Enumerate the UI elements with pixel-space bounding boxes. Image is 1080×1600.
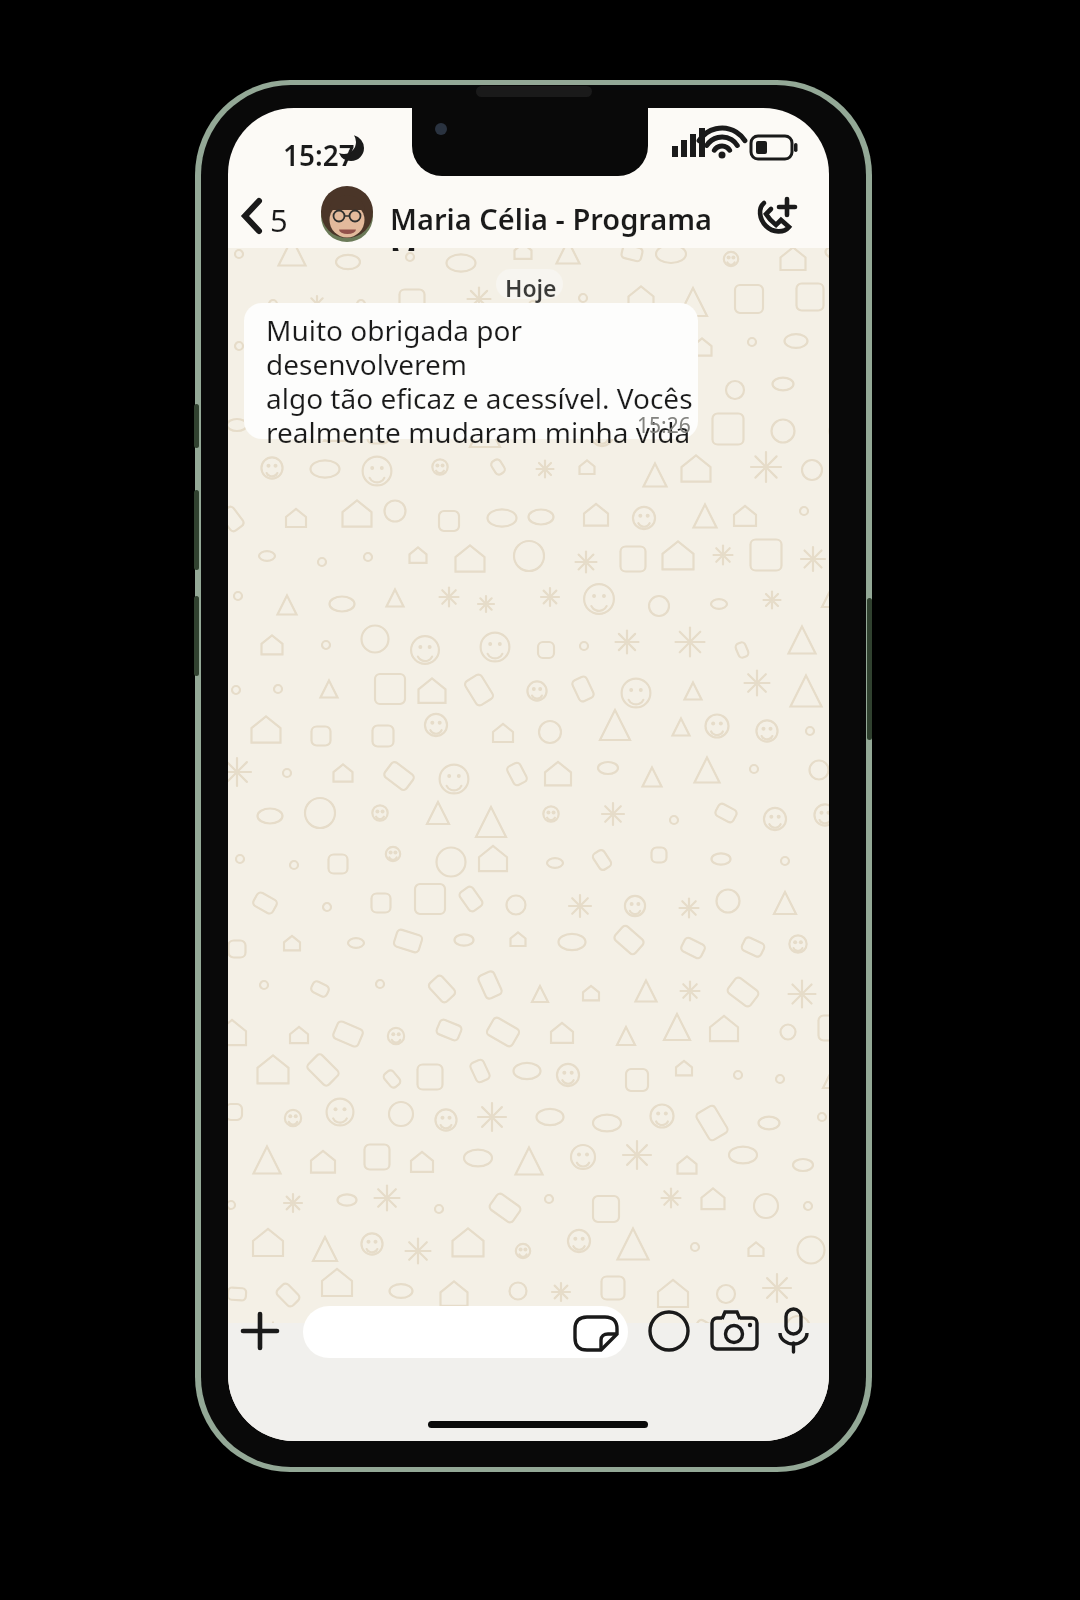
button[interactable]: Pix payment	[646, 1304, 694, 1358]
button[interactable]: Camera	[710, 1304, 760, 1358]
staticText: Hoje	[505, 272, 557, 303]
button[interactable]: Maria Célia - Programa Me...	[382, 190, 732, 242]
button[interactable]: Back	[240, 186, 302, 244]
button[interactable]: Hoje	[494, 268, 566, 301]
button[interactable]: Profile photo	[318, 188, 376, 246]
button[interactable]: Message input	[300, 1302, 632, 1362]
button[interactable]: Voice message	[772, 1302, 818, 1360]
button[interactable]: Attach	[236, 1304, 286, 1358]
button[interactable]: Video call	[748, 186, 810, 244]
staticText: 15:26	[637, 411, 691, 440]
staticText: 5	[270, 199, 288, 241]
staticText: Maria Célia - Programa Me...	[390, 199, 740, 251]
staticText: 15:27	[283, 136, 355, 174]
button[interactable]: Muito obrigada por desenvolverem algo tã…	[244, 303, 698, 439]
staticText: Muito obrigada por desenvolverem algo tã…	[266, 311, 720, 447]
